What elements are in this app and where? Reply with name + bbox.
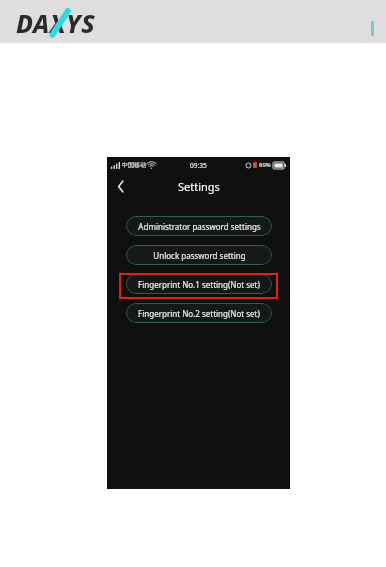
staticText: Administrator password settings — [138, 221, 261, 232]
staticText: Unlock password setting — [153, 250, 246, 261]
button[interactable]: Back — [110, 175, 132, 197]
button[interactable]: Administrator password settings — [126, 216, 272, 236]
staticText: DAXYS — [16, 6, 96, 40]
staticText: Settings — [178, 179, 220, 194]
staticText: Fingerprint No.2 setting(Not set) — [138, 308, 260, 319]
staticText: 09:35 — [190, 161, 207, 170]
button[interactable]: Unlock password setting — [126, 245, 272, 265]
staticText: Fingerprint No.1 setting(Not set) — [138, 279, 260, 290]
button[interactable]: Fingerprint No.1 setting(Not set) — [126, 274, 272, 294]
staticText: 89% — [259, 161, 271, 169]
staticText: 中国移动 — [122, 161, 146, 169]
button[interactable]: Fingerprint No.2 setting(Not set) — [126, 303, 272, 323]
